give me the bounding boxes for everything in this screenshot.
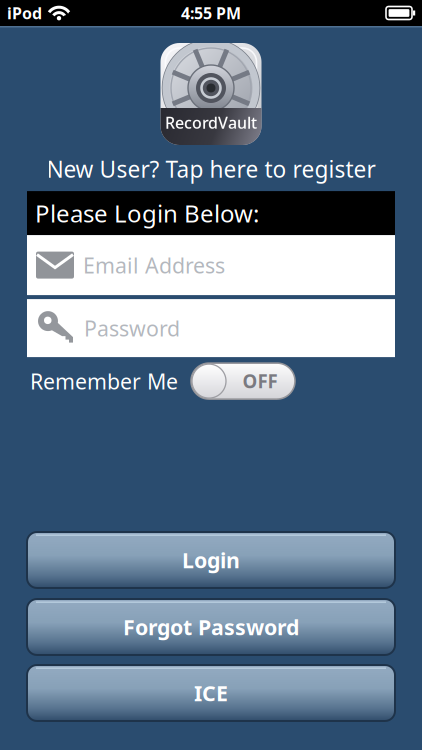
staticText: ICE: [194, 679, 228, 707]
staticText: Remember Me: [30, 367, 178, 395]
staticText: Email Address: [83, 251, 225, 279]
staticText: iPod: [7, 2, 42, 24]
staticText: Password: [84, 314, 180, 342]
button[interactable]: ICE: [27, 665, 395, 721]
button[interactable]: Forgot Password: [27, 599, 395, 655]
staticText: New User? Tap here to register: [46, 154, 375, 184]
staticText: Please Login Below:: [35, 197, 259, 229]
button[interactable]: Remember Me switch, off: [191, 363, 295, 399]
staticText: 4:55 PM: [181, 2, 241, 24]
staticText: Login: [182, 546, 240, 574]
staticText: OFF: [242, 369, 277, 393]
button[interactable]: Email Address: [27, 235, 395, 295]
button[interactable]: Password: [27, 299, 395, 357]
staticText: Forgot Password: [123, 613, 299, 641]
button[interactable]: Login: [27, 532, 395, 588]
staticText: RecordVault: [165, 112, 257, 133]
button[interactable]: New User? Tap here to register: [46, 154, 375, 184]
